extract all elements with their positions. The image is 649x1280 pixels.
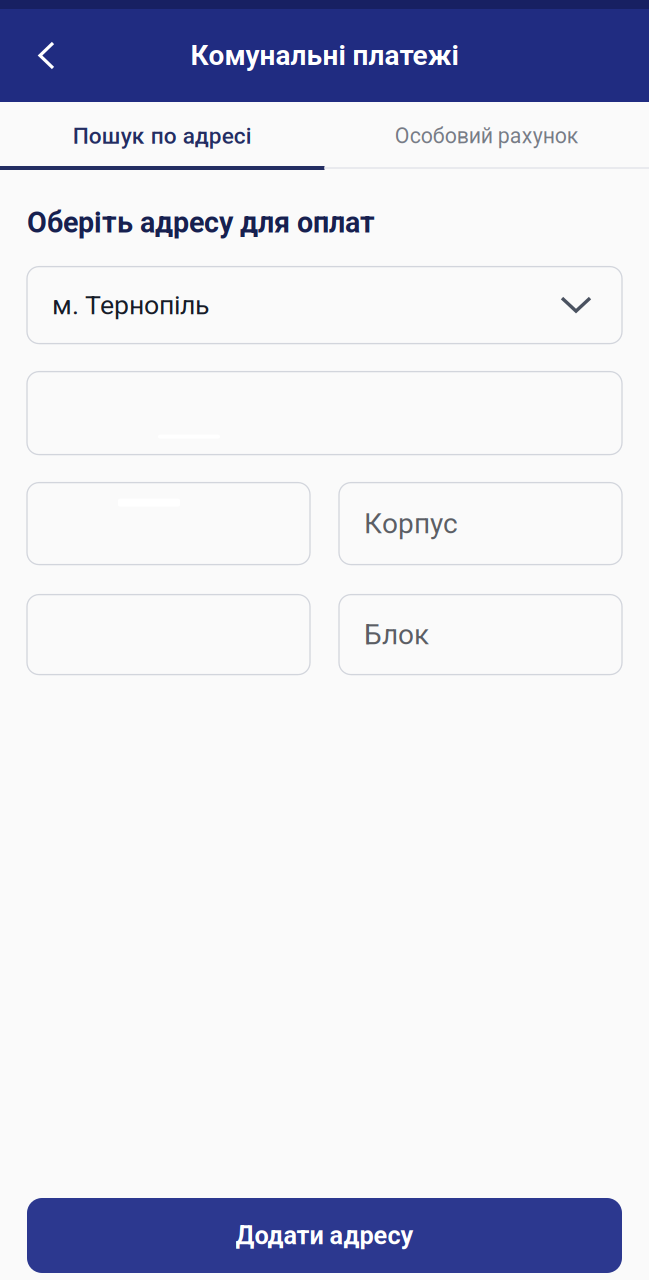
button[interactable]: Back [0, 9, 77, 102]
button[interactable]: м. Тернопіль [27, 267, 622, 344]
button[interactable]: Пошук по адресі [0, 102, 324, 170]
button[interactable]: Додати адресу [27, 1198, 622, 1273]
staticText: Додати адресу [235, 1221, 413, 1250]
button[interactable]: Блок [339, 595, 622, 675]
staticText: Корпус [364, 507, 458, 540]
staticText: Комунальні платежі [190, 39, 458, 72]
button[interactable] [27, 372, 622, 455]
staticText: Особовий рахунок [395, 123, 579, 148]
button[interactable]: Особовий рахунок [324, 102, 649, 170]
staticText: Блок [364, 618, 429, 651]
button[interactable]: Корпус [339, 483, 622, 565]
button[interactable] [27, 595, 310, 675]
button[interactable] [27, 483, 310, 565]
staticText: Пошук по адресі [73, 123, 252, 149]
staticText: Оберіть адресу для оплат [27, 206, 375, 240]
staticText: м. Тернопіль [52, 289, 209, 321]
